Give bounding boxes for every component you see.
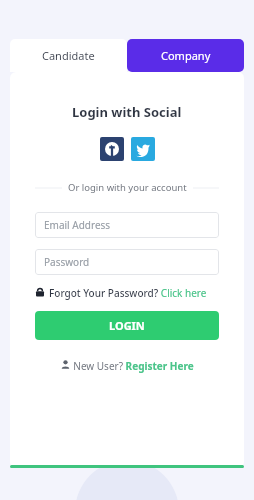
button[interactable]: Login with Facebook [100, 137, 124, 161]
button[interactable]: Company [127, 39, 244, 72]
button[interactable]: Forgot Your Password? Click here [35, 286, 219, 300]
staticText: Candidate [42, 48, 95, 63]
staticText: Email Address [44, 218, 111, 232]
staticText: Login with Social [72, 103, 182, 121]
staticText: New User? Register Here [73, 359, 194, 373]
button[interactable]: Candidate [10, 39, 127, 72]
button[interactable]: Email Address [35, 212, 219, 238]
button[interactable]: Password [35, 249, 219, 275]
staticText: LOGIN [109, 318, 145, 333]
staticText: Password [44, 255, 90, 269]
staticText: Or login with your account [68, 181, 187, 194]
button[interactable]: LOGIN [35, 311, 219, 340]
staticText: Company [161, 48, 211, 63]
staticText: Forgot Your Password? Click here [49, 286, 207, 300]
button[interactable]: New User? Register Here [35, 359, 219, 373]
button[interactable]: Login with Twitter [131, 137, 155, 161]
